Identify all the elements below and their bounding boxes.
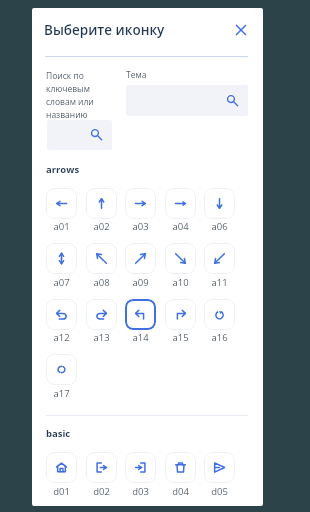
staticText: a02 — [93, 220, 110, 233]
button[interactable]: a16 — [204, 299, 235, 330]
staticText: a13 — [93, 331, 110, 344]
button[interactable]: a10 — [165, 243, 196, 274]
staticText: a15 — [172, 331, 189, 344]
button[interactable]: a02 — [86, 188, 117, 219]
button[interactable]: a13 — [86, 299, 117, 330]
staticText: basic — [46, 427, 71, 440]
button[interactable]: a15 — [165, 299, 196, 330]
staticText: a09 — [132, 276, 149, 289]
button[interactable]: d03 — [125, 452, 156, 483]
staticText: Тема — [126, 69, 147, 81]
button[interactable]: a17 — [46, 354, 77, 385]
staticText: Поиск по ключевым словам или названию — [46, 70, 94, 120]
staticText: a17 — [53, 387, 70, 400]
staticText: d05 — [211, 485, 228, 498]
button[interactable]: a09 — [125, 243, 156, 274]
staticText: a06 — [211, 220, 228, 233]
button[interactable]: d02 — [86, 452, 117, 483]
button[interactable]: a08 — [86, 243, 117, 274]
button[interactable]: a01 — [46, 188, 77, 219]
staticText: a12 — [53, 331, 70, 344]
button[interactable]: Поиск — [47, 120, 112, 150]
staticText: a07 — [53, 276, 70, 289]
staticText: d03 — [132, 485, 149, 498]
staticText: a16 — [211, 331, 228, 344]
staticText: a10 — [172, 276, 189, 289]
staticText: a01 — [53, 220, 70, 233]
button[interactable]: Закрыть — [226, 15, 256, 45]
staticText: a08 — [93, 276, 110, 289]
staticText: d04 — [172, 485, 189, 498]
button[interactable]: d04 — [165, 452, 196, 483]
staticText: a03 — [132, 220, 149, 233]
button[interactable]: a04 — [165, 188, 196, 219]
staticText: d02 — [93, 485, 110, 498]
button[interactable]: a12 — [46, 299, 77, 330]
button[interactable]: a03 — [125, 188, 156, 219]
staticText: a04 — [172, 220, 189, 233]
staticText: a14 — [132, 331, 149, 344]
staticText: a11 — [211, 276, 228, 289]
button[interactable]: a11 — [204, 243, 235, 274]
button[interactable]: a06 — [204, 188, 235, 219]
staticText: Выберите иконку — [44, 21, 165, 39]
button[interactable]: d05 — [204, 452, 235, 483]
button[interactable]: d01 — [46, 452, 77, 483]
button[interactable]: Поиск — [126, 85, 248, 116]
button[interactable]: a07 — [46, 243, 77, 274]
staticText: d01 — [53, 485, 70, 498]
button[interactable]: a14 — [125, 299, 156, 330]
staticText: arrows — [46, 163, 80, 176]
